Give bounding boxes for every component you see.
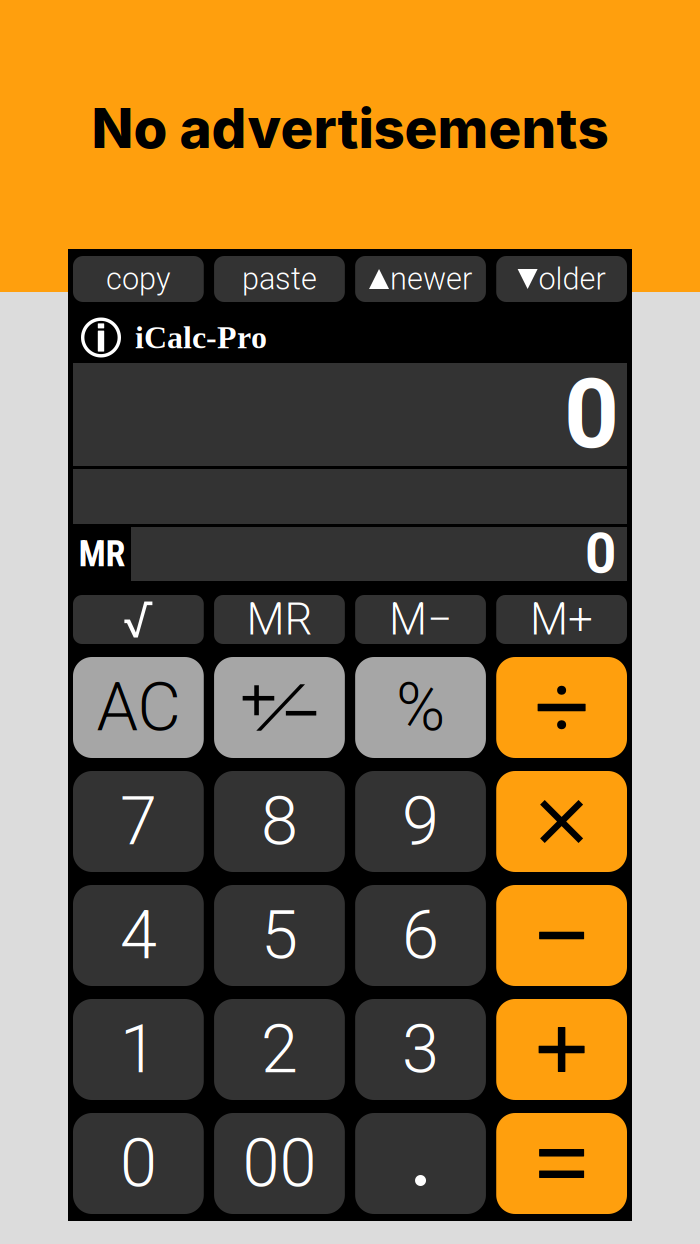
button[interactable] xyxy=(355,1113,486,1214)
button[interactable]: M− xyxy=(355,595,486,644)
staticText: MR xyxy=(246,594,312,645)
staticText: M+ xyxy=(530,594,593,645)
button[interactable]: 3 xyxy=(355,999,486,1100)
button[interactable]: older xyxy=(496,256,627,302)
staticText: 2 xyxy=(261,1010,298,1088)
staticText: 00 xyxy=(242,1124,316,1202)
button[interactable]: AC xyxy=(73,657,204,758)
staticText: 0 xyxy=(120,1124,157,1202)
button[interactable]: 8 xyxy=(214,771,345,872)
button[interactable]: 1 xyxy=(73,999,204,1100)
staticText: 9 xyxy=(402,782,439,860)
staticText: No advertisements xyxy=(91,95,608,161)
staticText: paste xyxy=(242,261,317,297)
button[interactable]: 00 xyxy=(214,1113,345,1214)
staticText: copy xyxy=(106,261,171,297)
staticText: older xyxy=(539,261,606,297)
button[interactable] xyxy=(73,595,204,644)
button[interactable]: M+ xyxy=(496,595,627,644)
button[interactable]: paste xyxy=(214,256,345,302)
button[interactable]: newer xyxy=(355,256,486,302)
staticText: iCalc-Pro xyxy=(135,320,267,355)
staticText: 5 xyxy=(261,896,298,974)
staticText: AC xyxy=(96,668,180,746)
button[interactable]: 4 xyxy=(73,885,204,986)
staticText: 6 xyxy=(402,896,439,974)
staticText: 3 xyxy=(402,1010,439,1088)
button[interactable] xyxy=(496,999,627,1100)
staticText: 8 xyxy=(261,782,298,860)
button[interactable]: 7 xyxy=(73,771,204,872)
button[interactable]: copy xyxy=(73,256,204,302)
staticText: 4 xyxy=(120,896,157,974)
button[interactable]: 9 xyxy=(355,771,486,872)
button[interactable] xyxy=(496,885,627,986)
staticText: newer xyxy=(390,261,472,297)
button[interactable]: 6 xyxy=(355,885,486,986)
button[interactable] xyxy=(496,771,627,872)
staticText: % xyxy=(396,668,445,746)
staticText: 0 xyxy=(564,358,619,471)
button[interactable] xyxy=(496,657,627,758)
staticText: 1 xyxy=(120,1010,157,1088)
button[interactable]: 5 xyxy=(214,885,345,986)
staticText: MR xyxy=(78,533,125,575)
staticText: M− xyxy=(389,594,452,645)
button[interactable]: % xyxy=(355,657,486,758)
button[interactable]: 2 xyxy=(214,999,345,1100)
staticText: 7 xyxy=(120,782,157,860)
button[interactable] xyxy=(496,1113,627,1214)
button[interactable] xyxy=(214,657,345,758)
staticText: 0 xyxy=(585,522,616,586)
button[interactable]: MR xyxy=(214,595,345,644)
button[interactable]: 0 xyxy=(73,1113,204,1214)
